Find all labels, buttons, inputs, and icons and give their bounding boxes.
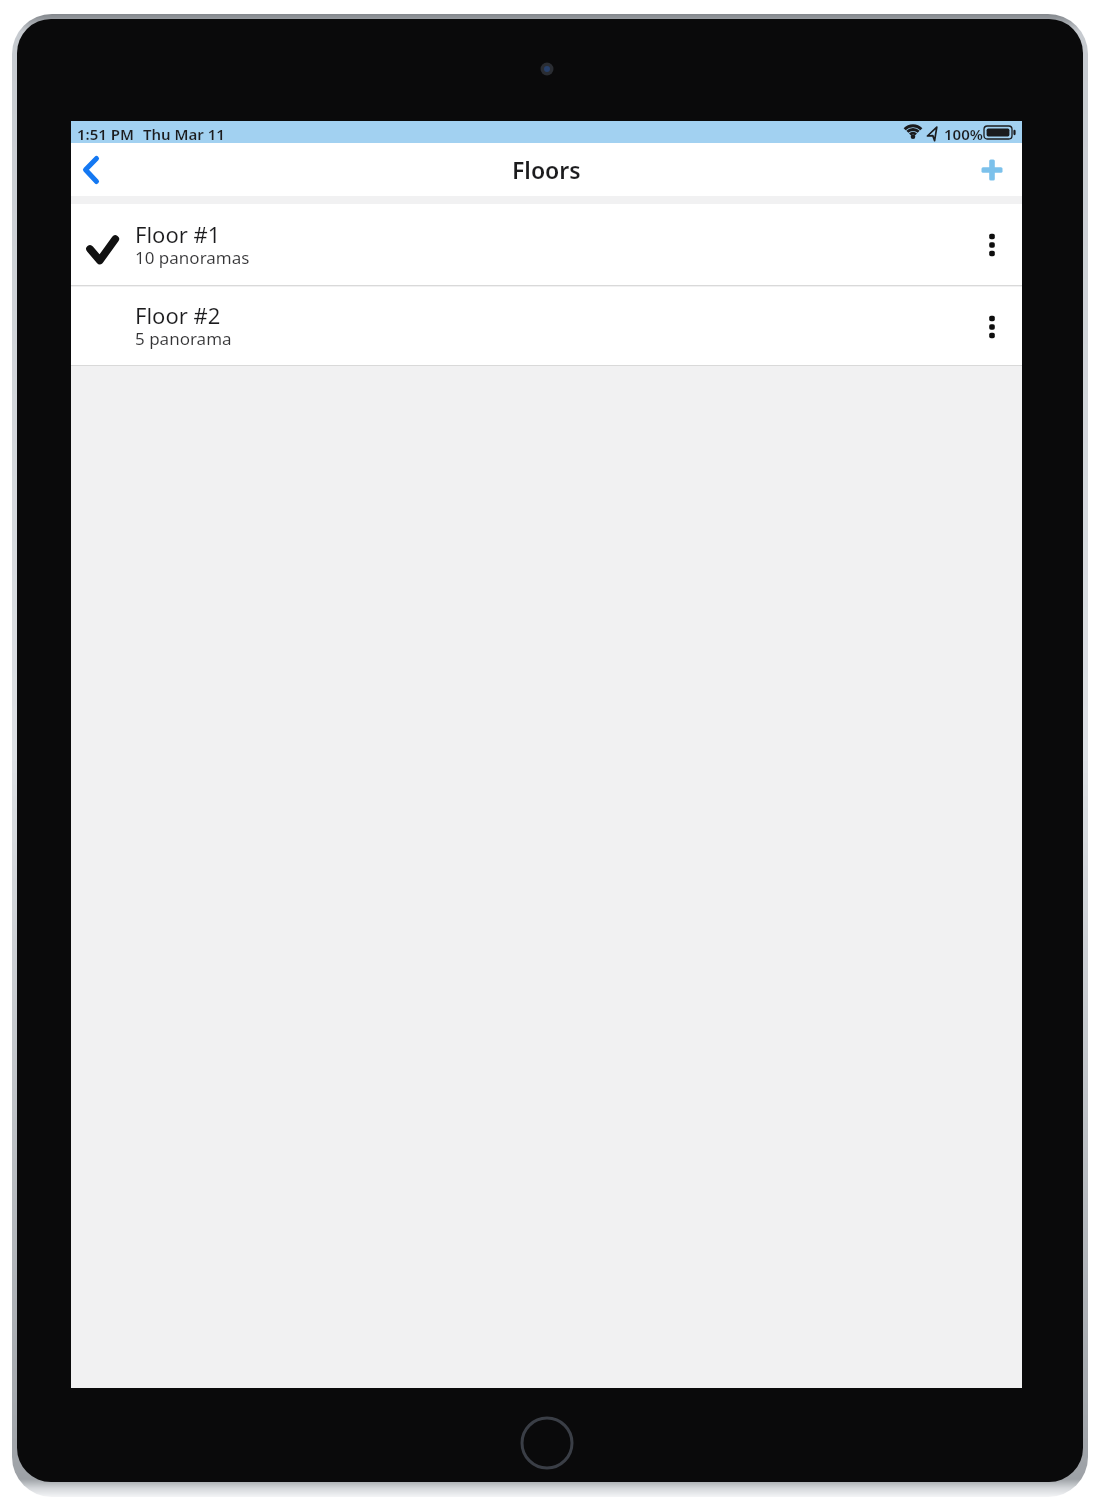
staticText: Floor #2 xyxy=(135,300,221,330)
staticText: 10 panoramas xyxy=(135,246,250,269)
button[interactable] xyxy=(73,150,113,190)
staticText: Thu Mar 11 xyxy=(143,124,225,144)
button[interactable] xyxy=(972,307,1012,347)
staticText: 100% xyxy=(944,124,983,144)
button[interactable]: Floor #2 xyxy=(71,287,1022,366)
button[interactable] xyxy=(971,149,1013,191)
staticText: 1:51 PM xyxy=(77,124,134,144)
staticText: Floors xyxy=(512,154,581,185)
button[interactable]: Floor #1 xyxy=(71,204,1022,286)
button[interactable] xyxy=(972,225,1012,265)
staticText: 5 panorama xyxy=(135,327,232,350)
staticText: Floor #1 xyxy=(135,219,221,249)
